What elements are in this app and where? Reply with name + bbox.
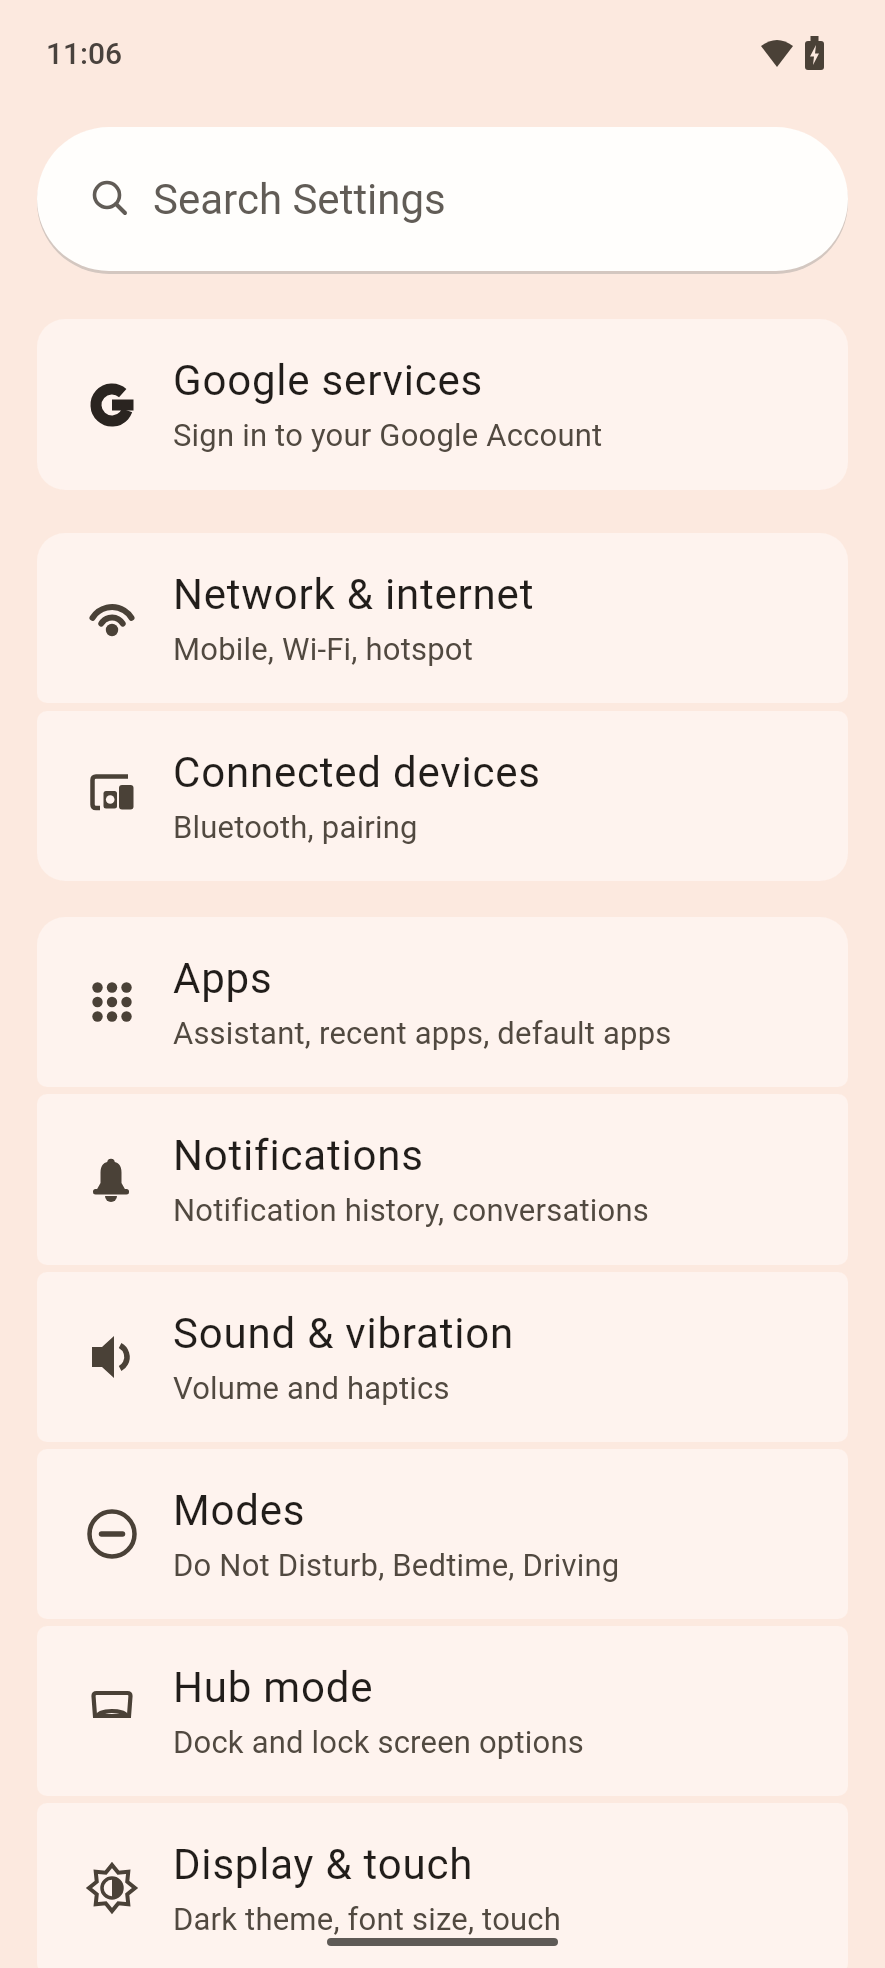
staticText: Connected devices [173,748,541,797]
staticText: Mobile, Wi-Fi, hotspot [173,631,474,667]
staticText: Sign in to your Google Account [173,417,603,453]
staticText: Notifications [173,1131,424,1180]
button[interactable]: Network & internet [37,533,848,703]
staticText: Modes [173,1486,306,1535]
button[interactable]: Connected devices [37,711,848,881]
staticText: Assistant, recent apps, default apps [173,1015,672,1051]
staticText: Display & touch [173,1840,474,1889]
staticText: Google services [173,356,484,405]
staticText: Hub mode [173,1663,374,1712]
staticText: Dock and lock screen options [173,1724,584,1760]
button[interactable]: Hub mode [37,1626,848,1796]
button[interactable]: Modes [37,1449,848,1619]
staticText: Apps [173,954,273,1003]
staticText: Notification history, conversations [173,1192,649,1228]
staticText: Search Settings [153,175,446,224]
button[interactable]: Apps [37,917,848,1087]
staticText: Dark theme, font size, touch [173,1901,561,1937]
button[interactable]: Search Settings [37,127,848,271]
staticText: Sound & vibration [173,1309,514,1358]
button[interactable]: Sound & vibration [37,1272,848,1442]
staticText: Network & internet [173,570,535,619]
button[interactable]: Display & touch [37,1803,848,1968]
button[interactable]: Notifications [37,1094,848,1265]
staticText: Do Not Disturb, Bedtime, Driving [173,1547,620,1583]
staticText: Volume and haptics [173,1370,450,1406]
button[interactable]: Google services [37,319,848,490]
staticText: Bluetooth, pairing [173,809,418,845]
staticText: 11:06 [46,36,123,71]
